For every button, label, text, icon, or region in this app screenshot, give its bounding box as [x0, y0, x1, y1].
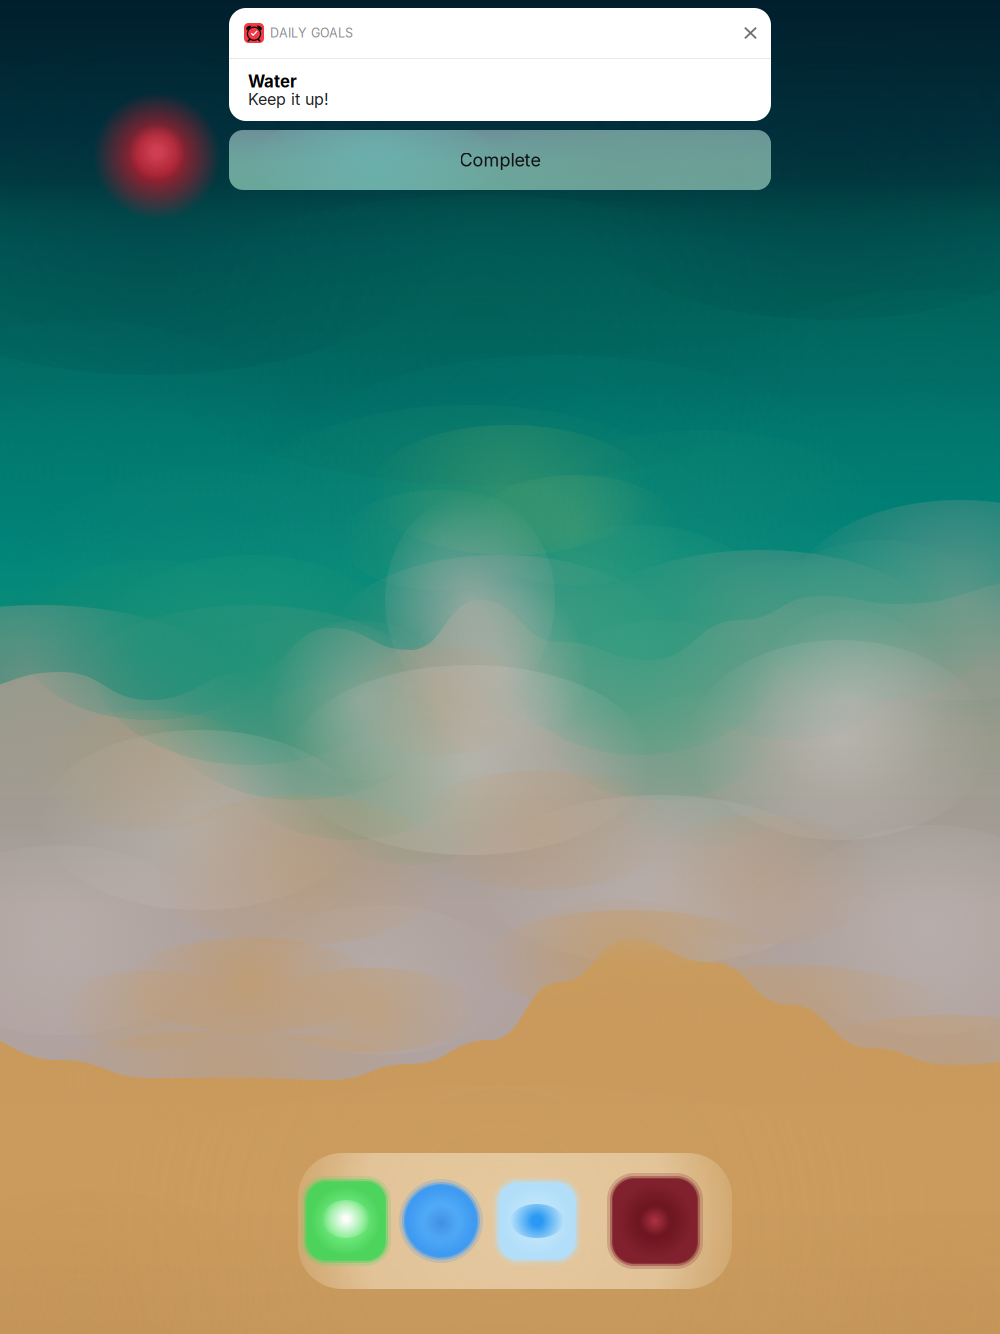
button[interactable]: Safari [398, 1178, 484, 1264]
button[interactable]: Messages [300, 1175, 392, 1267]
staticText: Keep it up! [248, 89, 329, 109]
staticText: Complete [459, 149, 540, 171]
staticText: DAILY GOALS [270, 25, 353, 41]
button[interactable]: Daily Goals [606, 1172, 704, 1270]
button[interactable]: Mail [492, 1176, 582, 1266]
button[interactable]: Complete [229, 130, 771, 190]
staticText: Water [248, 71, 297, 91]
button[interactable]: Close notification [736, 19, 765, 47]
